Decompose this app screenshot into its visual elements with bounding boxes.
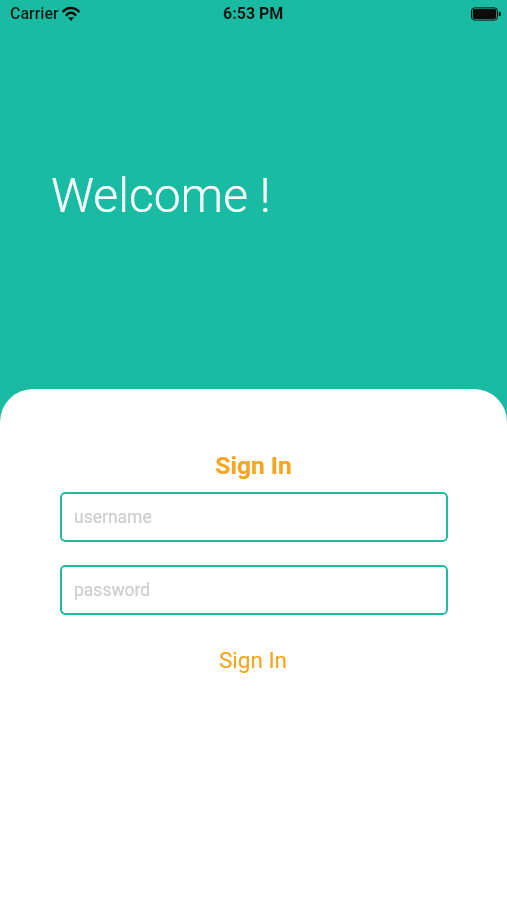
staticText: Sign In [219, 647, 288, 673]
button[interactable]: password [60, 565, 448, 615]
staticText: username [74, 507, 152, 528]
staticText: 6:53 PM [223, 4, 284, 23]
button[interactable]: Sign In [0, 642, 507, 678]
staticText: Welcome ! [51, 167, 271, 223]
staticText: password [74, 580, 151, 601]
button[interactable]: username [60, 492, 448, 542]
staticText: Sign In [0, 451, 507, 480]
staticText: Carrier [10, 4, 59, 23]
